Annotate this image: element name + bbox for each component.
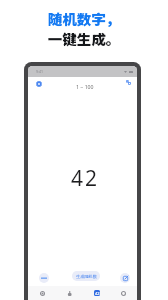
button[interactable]: Copy result: [123, 77, 134, 88]
staticText: 生成随机数: [76, 274, 97, 279]
staticText: 一键生成。: [0, 28, 168, 49]
staticText: 9:41: [36, 69, 43, 74]
button[interactable]: 生成随机数: [72, 271, 100, 281]
staticText: 随机数字，: [0, 8, 168, 29]
staticText: 42: [71, 164, 100, 193]
button[interactable]: More options: [39, 273, 49, 283]
button[interactable]: Edit range: [120, 273, 130, 283]
button[interactable]: Info: [110, 286, 137, 300]
button[interactable]: Settings: [33, 78, 44, 89]
staticText: 42: [95, 291, 100, 296]
button[interactable]: Tap: [56, 286, 83, 300]
button[interactable]: Shutter: [28, 286, 56, 300]
staticText: 1 ~ 100: [76, 83, 94, 90]
button[interactable]: 42: [83, 286, 110, 300]
